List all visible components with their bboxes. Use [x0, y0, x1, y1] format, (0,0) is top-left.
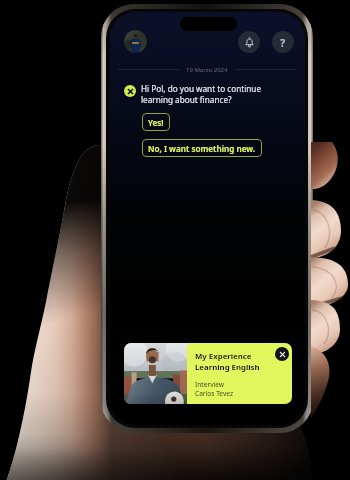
button[interactable]: Notifications	[238, 31, 260, 53]
staticText: Interview Carlos Tevez	[195, 380, 234, 398]
staticText: Yes!	[148, 117, 164, 128]
staticText: ?	[280, 35, 286, 50]
staticText: My Experience Learning English	[195, 351, 260, 372]
button[interactable]: Profile	[124, 30, 147, 53]
button[interactable]: Help	[272, 31, 294, 53]
staticText: No, I want something new.	[148, 143, 256, 154]
staticText: Hi Pol, do you want to continue learning…	[141, 83, 262, 105]
button[interactable]: Yes!	[142, 113, 170, 131]
button[interactable]: My Experience Learning English	[124, 343, 292, 404]
staticText: 19 Marzo 2024	[186, 66, 228, 74]
button[interactable]: Close	[275, 347, 289, 361]
button[interactable]: No, I want something new.	[142, 139, 262, 157]
